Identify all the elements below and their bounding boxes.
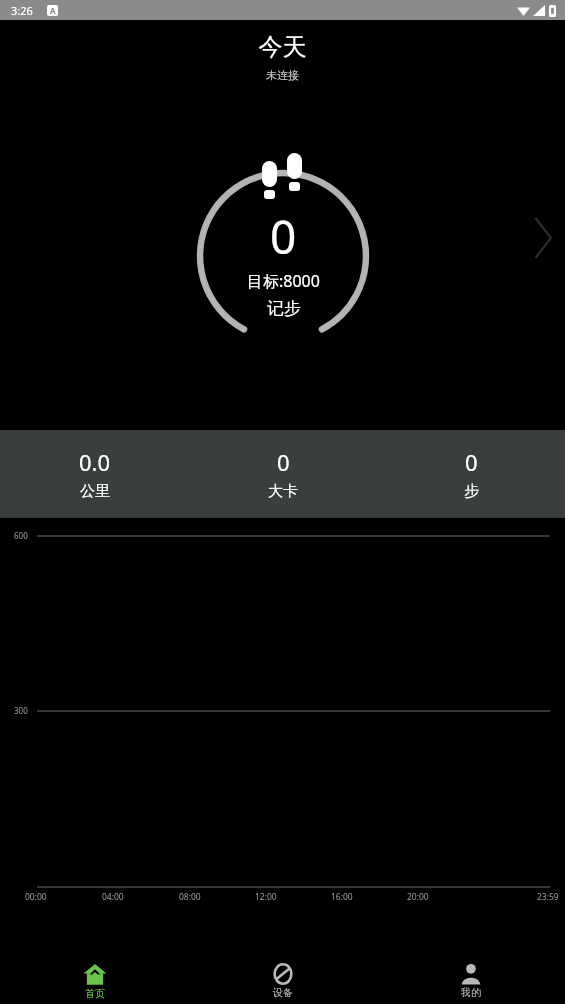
button[interactable]: 0 <box>377 430 565 518</box>
staticText: 00:00 <box>25 891 47 903</box>
staticText: 未连接 <box>0 68 565 82</box>
button[interactable]: 设备 <box>189 958 377 1004</box>
staticText: 步 <box>464 482 479 501</box>
staticText: 0 <box>277 447 290 477</box>
staticText: 20:00 <box>407 891 429 903</box>
staticText: 3:26 <box>11 3 33 18</box>
staticText: 08:00 <box>179 891 201 903</box>
staticText: 04:00 <box>102 891 124 903</box>
button[interactable]: 我的 <box>377 958 565 1004</box>
staticText: 16:00 <box>331 891 353 903</box>
staticText: 记步 <box>267 298 301 319</box>
staticText: 0.0 <box>79 447 111 477</box>
staticText: 大卡 <box>268 482 298 501</box>
staticText: 0 <box>465 447 478 477</box>
staticText: 0 <box>270 205 297 268</box>
staticText: 300 <box>14 705 28 716</box>
staticText: 今天 <box>0 32 565 62</box>
button[interactable]: 首页 <box>0 958 189 1004</box>
button[interactable]: 0 <box>189 430 377 518</box>
button[interactable]: 0.0 <box>0 430 189 518</box>
button[interactable]: 0 <box>183 156 383 356</box>
staticText: 设备 <box>273 986 293 999</box>
staticText: 目标:8000 <box>247 270 320 292</box>
staticText: 公里 <box>80 482 110 501</box>
staticText: 我的 <box>461 986 481 999</box>
staticText: 12:00 <box>255 891 277 903</box>
staticText: 600 <box>14 530 28 541</box>
staticText: 首页 <box>85 987 105 1000</box>
button[interactable]: Next day <box>521 210 565 266</box>
staticText: A <box>50 5 56 16</box>
staticText: 23:59 <box>537 891 559 903</box>
